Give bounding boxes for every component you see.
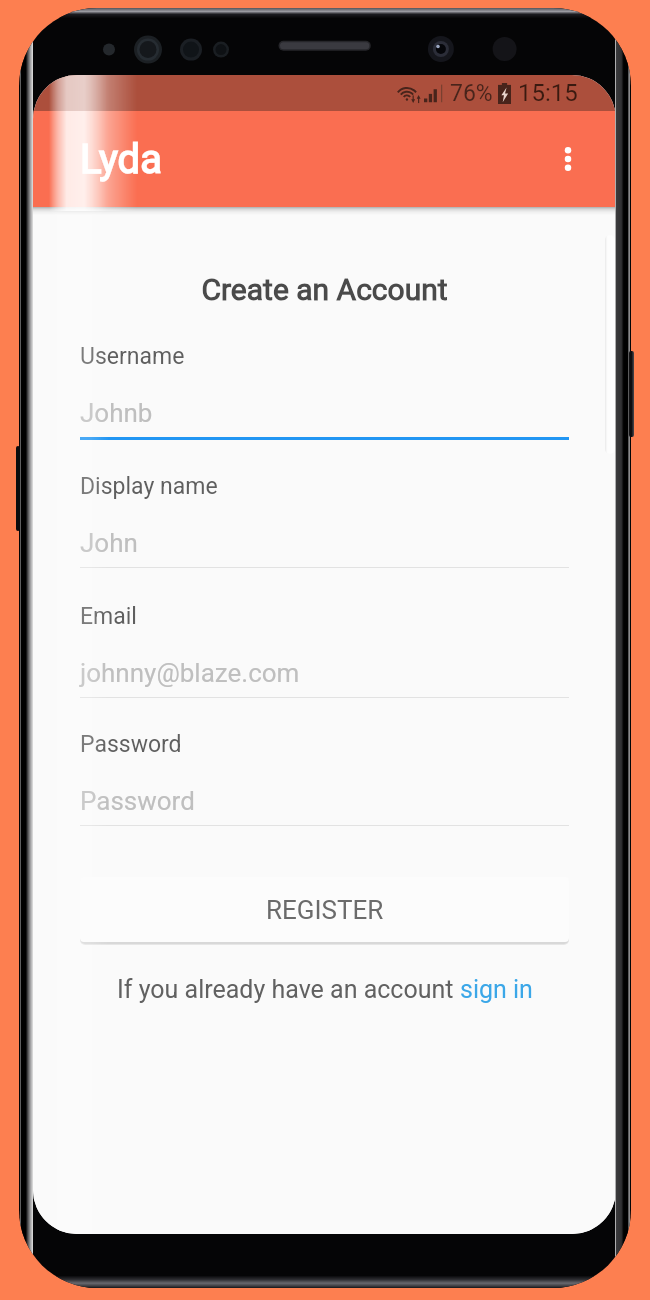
button[interactable]: REGISTER xyxy=(80,877,569,942)
staticText: Johnb xyxy=(80,398,153,428)
staticText: REGISTER xyxy=(266,895,384,925)
staticText: Email xyxy=(80,603,137,630)
staticText: Password xyxy=(80,731,182,758)
staticText: Lyda xyxy=(80,136,162,183)
staticText: If you already have an account xyxy=(117,975,460,1004)
staticText: Password xyxy=(80,786,195,816)
staticText: Display name xyxy=(80,473,218,500)
staticText: Username xyxy=(80,343,185,370)
staticText: 76% xyxy=(450,80,493,107)
button[interactable]: sign in xyxy=(460,975,533,1004)
staticText: johnny@blaze.com xyxy=(80,658,300,688)
staticText: Create an Account xyxy=(80,272,569,307)
staticText: 15:15 xyxy=(518,79,578,107)
staticText: John xyxy=(80,528,138,558)
button[interactable]: More options xyxy=(542,133,594,185)
